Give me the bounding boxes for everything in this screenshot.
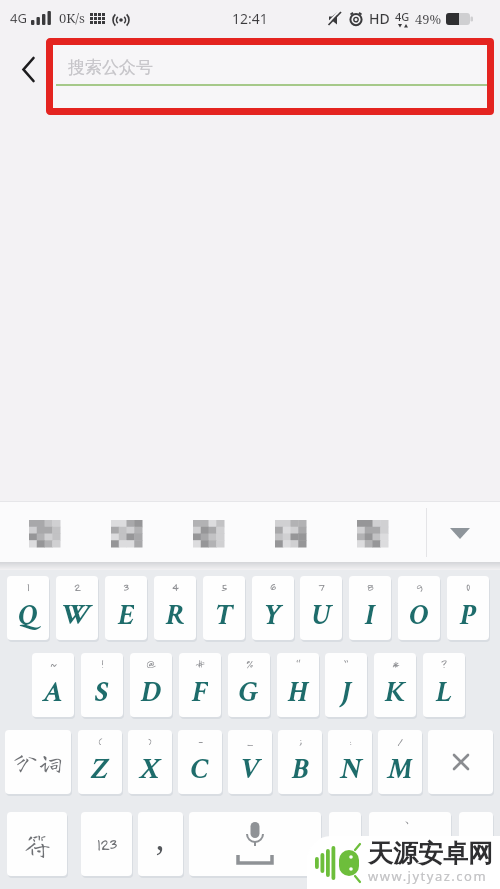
button[interactable]: @ — [130, 653, 172, 717]
button[interactable]: 7 — [300, 576, 342, 640]
button[interactable] — [111, 520, 142, 547]
button[interactable] — [275, 520, 306, 547]
staticText: 符 — [24, 831, 51, 858]
button[interactable]: 6 — [252, 576, 294, 640]
staticText: M — [387, 750, 413, 789]
staticText: 0K/s — [59, 9, 85, 27]
staticText: ! — [101, 657, 104, 671]
staticText: N — [340, 750, 361, 789]
button[interactable]: * — [374, 653, 416, 717]
staticText: T — [216, 596, 232, 635]
staticText: I — [365, 596, 376, 635]
staticText: 搜索公众号 — [68, 57, 153, 78]
button[interactable]: 分词 — [5, 730, 71, 794]
staticText: A — [43, 673, 63, 712]
staticText: J — [341, 673, 352, 712]
staticText: K — [385, 673, 406, 712]
staticText: 123 — [97, 835, 117, 854]
staticText: ) — [148, 734, 152, 748]
staticText: G — [239, 673, 259, 712]
staticText: P — [460, 596, 476, 635]
staticText: ; — [299, 734, 302, 748]
button[interactable]: 、 — [369, 812, 451, 876]
button[interactable]: ! — [81, 653, 123, 717]
staticText: 分词 — [13, 750, 64, 775]
staticText: V — [241, 750, 259, 789]
staticText: @ — [146, 657, 156, 671]
button[interactable]: % — [228, 653, 270, 717]
staticText: 9 — [416, 580, 423, 594]
staticText: 8 — [367, 580, 373, 594]
staticText: 12:41 — [232, 9, 268, 28]
staticText: F — [192, 673, 208, 712]
staticText: 2 — [74, 580, 81, 594]
staticText: / — [397, 734, 403, 748]
staticText: ” — [344, 657, 348, 671]
button[interactable]: 0 — [447, 576, 489, 640]
staticText: 5 — [221, 580, 227, 594]
button[interactable]: 4 — [154, 576, 196, 640]
staticText: H — [288, 673, 309, 712]
button[interactable]: / — [378, 730, 422, 794]
staticText: 6 — [270, 580, 276, 594]
staticText: www.jytyaz.com — [368, 867, 488, 885]
button[interactable] — [189, 812, 321, 876]
staticText: 天源安卓网 — [368, 838, 493, 869]
staticText: 4 — [172, 580, 178, 594]
button[interactable]: # — [179, 653, 221, 717]
button[interactable]: 天源安卓网 — [307, 836, 500, 889]
button[interactable] — [12, 54, 44, 84]
staticText: W — [63, 596, 91, 635]
staticText: _ — [247, 734, 253, 748]
staticText: 4G — [395, 9, 410, 24]
staticText: “ — [296, 657, 300, 671]
button[interactable]: : — [328, 730, 372, 794]
button[interactable]: ; — [278, 730, 322, 794]
button[interactable]: 5 — [203, 576, 245, 640]
button[interactable]: 123 — [81, 812, 132, 876]
button[interactable] — [459, 812, 493, 876]
button[interactable]: 8 — [349, 576, 391, 640]
staticText: E — [118, 596, 134, 635]
staticText: 、 — [404, 813, 417, 825]
staticText: O — [409, 596, 429, 635]
staticText: X — [139, 750, 161, 789]
button[interactable] — [193, 520, 224, 547]
button[interactable]: _ — [228, 730, 272, 794]
button[interactable]: ” — [325, 653, 367, 717]
button[interactable]: , — [138, 812, 183, 876]
button[interactable] — [428, 730, 493, 794]
button[interactable]: 符 — [7, 812, 67, 876]
button[interactable]: - — [178, 730, 222, 794]
staticText: 49% — [415, 10, 442, 28]
staticText: C — [191, 750, 209, 789]
button[interactable] — [357, 520, 388, 547]
button[interactable]: ~ — [32, 653, 74, 717]
button[interactable] — [329, 812, 361, 876]
button[interactable]: 9 — [398, 576, 440, 640]
staticText: ? — [441, 657, 447, 671]
staticText: 3 — [123, 580, 129, 594]
button[interactable]: “ — [277, 653, 319, 717]
button[interactable]: ( — [78, 730, 122, 794]
staticText: : — [349, 734, 352, 748]
button[interactable]: 1 — [7, 576, 49, 640]
staticText: 4G — [10, 9, 27, 27]
staticText: Y — [264, 596, 283, 635]
button[interactable]: 搜索公众号 — [46, 38, 494, 115]
staticText: HD — [369, 9, 390, 28]
staticText: Q — [18, 596, 39, 635]
staticText: S — [95, 673, 109, 712]
button[interactable]: ) — [128, 730, 172, 794]
staticText: - — [198, 734, 203, 748]
button[interactable] — [440, 517, 480, 549]
staticText: , — [156, 816, 165, 860]
staticText: 0 — [466, 580, 470, 594]
button[interactable]: 3 — [105, 576, 147, 640]
button[interactable] — [29, 520, 60, 547]
button[interactable]: 2 — [56, 576, 98, 640]
button[interactable]: ? — [423, 653, 465, 717]
staticText: # — [195, 657, 205, 671]
staticText: Z — [91, 750, 110, 789]
staticText: U — [312, 596, 331, 635]
